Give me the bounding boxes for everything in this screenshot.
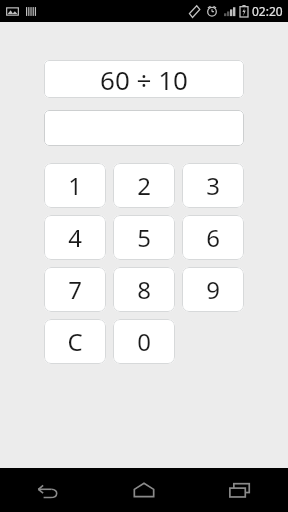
button[interactable]: Home (96, 468, 192, 512)
staticText: 3 (206, 169, 220, 202)
staticText: 7 (68, 273, 82, 306)
staticText: 1 (68, 169, 82, 202)
staticText: 2 (137, 169, 151, 202)
staticText: 6 (206, 221, 220, 254)
staticText: 4 (68, 221, 82, 254)
button[interactable]: 60 ÷ 10 (44, 60, 244, 98)
button[interactable]: 9 (182, 267, 244, 312)
staticText: 9 (206, 273, 220, 306)
staticText: 02:20 (252, 3, 283, 19)
staticText: 8 (137, 273, 151, 306)
staticText: 0 (137, 325, 151, 358)
staticText: C (67, 325, 83, 358)
button[interactable]: 2 (113, 163, 175, 208)
button[interactable]: 1 (44, 163, 106, 208)
button[interactable]: C (44, 319, 106, 364)
button[interactable]: 7 (44, 267, 106, 312)
staticText: 60 ÷ 10 (100, 62, 188, 97)
button[interactable]: 5 (113, 215, 175, 260)
button[interactable]: 4 (44, 215, 106, 260)
staticText: 5 (137, 221, 151, 254)
button[interactable]: 3 (182, 163, 244, 208)
button[interactable] (44, 110, 244, 146)
button[interactable]: Recent apps (192, 468, 288, 512)
button[interactable]: Back (0, 468, 96, 512)
button[interactable]: 0 (113, 319, 175, 364)
button[interactable]: 6 (182, 215, 244, 260)
button[interactable]: 8 (113, 267, 175, 312)
